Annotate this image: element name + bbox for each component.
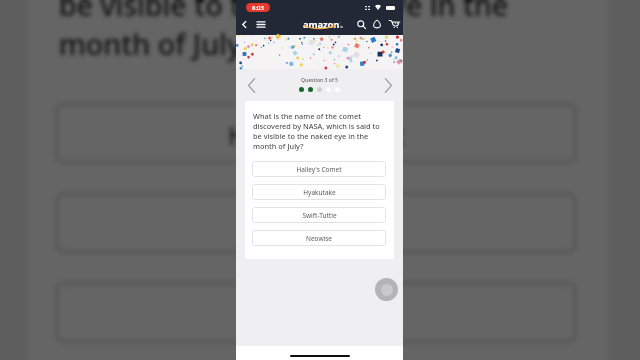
staticText: .in [340, 19, 341, 29]
staticText: What is the name of the comet discovered… [253, 111, 381, 151]
staticText: amazon [303, 18, 340, 31]
button[interactable]: Search [353, 16, 369, 32]
button[interactable]: Cart [385, 15, 403, 33]
staticText: Swift-Tuttle [302, 211, 337, 220]
button[interactable]: Hyakutake [252, 184, 386, 200]
button[interactable]: Swift-Tuttle [252, 207, 386, 223]
button[interactable]: Swift-Tuttle [55, 281, 577, 344]
staticText: 8:03 [252, 4, 264, 12]
button[interactable]: Back [236, 16, 252, 32]
staticText: Halley's Comet [226, 117, 406, 153]
staticText: Hyakutake [254, 207, 382, 242]
staticText: What is the name of the comet discovered… [59, 0, 558, 63]
button[interactable]: Assistant [375, 278, 398, 301]
button[interactable]: Hyakutake [55, 192, 577, 254]
button[interactable]: Halley's Comet [252, 161, 386, 177]
staticText: Question 3 of 5 [301, 77, 338, 84]
button[interactable]: Notifications [369, 16, 385, 32]
staticText: Swift-Tuttle [250, 297, 386, 332]
button[interactable]: Previous question [242, 76, 260, 94]
button[interactable]: Neowise [252, 230, 386, 246]
staticText: Halley's Comet [296, 165, 342, 174]
button[interactable]: Next question [379, 76, 397, 94]
staticText: Neowise [306, 234, 332, 243]
staticText: Hyakutake [303, 188, 336, 197]
button[interactable]: Menu [252, 15, 270, 33]
button[interactable]: Halley's Comet [55, 102, 577, 164]
